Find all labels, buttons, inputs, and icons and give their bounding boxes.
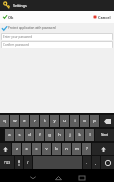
staticText: r [34, 118, 36, 124]
button[interactable]: Ok [0, 11, 17, 23]
staticText: d [28, 132, 31, 138]
button[interactable]: a [5, 129, 14, 141]
button[interactable]: ?123 [0, 156, 14, 169]
button[interactable]: Confirm password [2, 42, 112, 48]
button[interactable]: s [15, 129, 24, 141]
staticText: ?123 [4, 161, 11, 165]
staticText: f [39, 132, 41, 138]
staticText: v [45, 146, 48, 152]
button[interactable]: e [20, 115, 29, 127]
button[interactable]: Voice input [15, 156, 23, 169]
staticText: p [93, 118, 96, 124]
button[interactable]: q [0, 115, 9, 127]
button[interactable]: . [83, 156, 91, 169]
button[interactable]: m [72, 143, 81, 155]
button[interactable]: j [65, 129, 74, 141]
button[interactable]: Emoji [101, 156, 114, 169]
button[interactable]: l [85, 129, 94, 141]
button[interactable]: Shift [92, 143, 114, 155]
staticText: / [27, 160, 29, 165]
staticText: u [63, 118, 66, 124]
staticText: k [78, 132, 81, 138]
button[interactable]: / [24, 156, 32, 169]
staticText: q [3, 118, 6, 124]
button[interactable]: w [10, 115, 19, 127]
staticText: w [13, 118, 17, 124]
button[interactable]: n [62, 143, 71, 155]
staticText: z [16, 146, 18, 152]
button[interactable]: z [12, 143, 21, 155]
staticText: y [53, 118, 56, 124]
button[interactable]: b [52, 143, 61, 155]
staticText: ? [86, 146, 88, 152]
staticText: Next [101, 133, 108, 137]
button[interactable]: v [42, 143, 51, 155]
button[interactable]: o [80, 115, 89, 127]
button[interactable]: h [55, 129, 64, 141]
staticText: g [48, 132, 51, 138]
staticText: j [69, 132, 71, 138]
button[interactable]: p [90, 115, 99, 127]
button[interactable]: ? [82, 143, 91, 155]
button[interactable]: , [92, 156, 100, 169]
staticText: i [74, 118, 76, 124]
button[interactable]: k [75, 129, 84, 141]
staticText: l [89, 132, 91, 138]
staticText: c [35, 146, 38, 152]
staticText: Protect application with password [8, 26, 56, 30]
button[interactable]: Next [95, 129, 114, 141]
staticText: o [83, 118, 86, 124]
staticText: t [44, 118, 46, 124]
staticText: s [18, 132, 21, 138]
button[interactable]: Protect application with password [0, 23, 114, 33]
staticText: a [8, 132, 11, 138]
button[interactable]: r [30, 115, 39, 127]
button[interactable]: g [45, 129, 54, 141]
button[interactable]: Cancel [90, 11, 114, 23]
button[interactable]: c [32, 143, 41, 155]
button[interactable]: Enter your password [2, 34, 112, 40]
button[interactable]: x [22, 143, 31, 155]
staticText: Confirm password [3, 43, 29, 47]
staticText: b [55, 146, 58, 152]
button[interactable]: Back [27, 173, 39, 182]
button[interactable]: f [35, 129, 44, 141]
staticText: Cancel [98, 15, 111, 20]
button[interactable]: Backspace [100, 115, 114, 127]
button[interactable]: Shift [0, 143, 11, 155]
staticText: n [65, 146, 68, 152]
button[interactable]: i [70, 115, 79, 127]
staticText: Settings [13, 3, 27, 8]
staticText: h [58, 132, 61, 138]
button[interactable]: Home [52, 173, 64, 182]
staticText: m [75, 146, 79, 152]
staticText: , [95, 160, 97, 165]
button[interactable]: y [50, 115, 59, 127]
button[interactable]: Recents [76, 173, 88, 182]
button[interactable]: u [60, 115, 69, 127]
staticText: e [23, 118, 26, 124]
staticText: Ok [8, 15, 14, 20]
button[interactable]: t [40, 115, 49, 127]
staticText: . [86, 160, 88, 165]
button[interactable]: d [25, 129, 34, 141]
staticText: x [25, 146, 28, 152]
staticText: Enter your password [3, 35, 33, 39]
